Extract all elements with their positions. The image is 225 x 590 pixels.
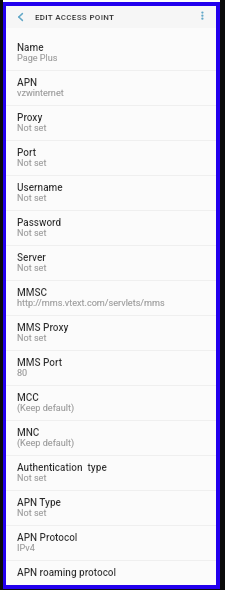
staticText: APN Protocol <box>17 532 78 544</box>
staticText: Port <box>17 147 37 159</box>
staticText: Not set <box>17 193 47 204</box>
staticText: IPv4 <box>17 543 35 554</box>
staticText: Not set <box>17 158 47 169</box>
button[interactable]: APN Type <box>6 491 216 526</box>
staticText: APN Type <box>17 497 61 509</box>
button[interactable]: APN <box>6 71 216 106</box>
staticText: Server <box>17 252 46 264</box>
button[interactable]: Name <box>6 36 216 71</box>
button[interactable]: Authentication type <box>6 456 216 491</box>
staticText: Not set <box>17 228 47 239</box>
staticText: MMSC <box>17 287 48 299</box>
staticText: APN <box>17 77 38 89</box>
staticText: EDIT ACCESS POINT <box>35 13 115 22</box>
staticText: Not set <box>17 473 47 484</box>
staticText: 80 <box>17 368 28 379</box>
staticText: http://mms.vtext.com/servlets/mms <box>17 298 165 309</box>
staticText: Authentication type <box>17 462 107 474</box>
staticText: MCC <box>17 392 39 404</box>
button[interactable]: Server <box>6 246 216 281</box>
button[interactable]: Username <box>6 176 216 211</box>
staticText: (Keep default) <box>17 438 75 449</box>
staticText: MNC <box>17 427 40 439</box>
button[interactable]: MMS Port <box>6 351 216 386</box>
staticText: vzwinternet <box>17 88 64 99</box>
button[interactable]: MNC <box>6 421 216 456</box>
button[interactable]: APN roaming protocol <box>6 561 216 585</box>
staticText: Password <box>17 217 62 229</box>
staticText: (Keep default) <box>17 403 75 414</box>
staticText: Not set <box>17 333 47 344</box>
staticText: Not set <box>17 263 47 274</box>
staticText: Not set <box>17 123 47 134</box>
button[interactable]: MMS Proxy <box>6 316 216 351</box>
staticText: APN roaming protocol <box>17 567 117 579</box>
button[interactable]: MCC <box>6 386 216 421</box>
staticText: Not set <box>17 508 47 519</box>
staticText: Username <box>17 182 63 194</box>
staticText: MMS Port <box>17 357 63 369</box>
button[interactable]: APN Protocol <box>6 526 216 561</box>
button[interactable]: Port <box>6 141 216 176</box>
button[interactable]: More options <box>195 6 211 28</box>
staticText: Page Plus <box>17 53 58 64</box>
button[interactable]: Proxy <box>6 106 216 141</box>
staticText: Proxy <box>17 112 43 124</box>
button[interactable]: Password <box>6 211 216 246</box>
staticText: Name <box>17 42 44 54</box>
button[interactable]: Navigate up <box>12 6 29 28</box>
staticText: MMS Proxy <box>17 322 69 334</box>
button[interactable]: MMSC <box>6 281 216 316</box>
